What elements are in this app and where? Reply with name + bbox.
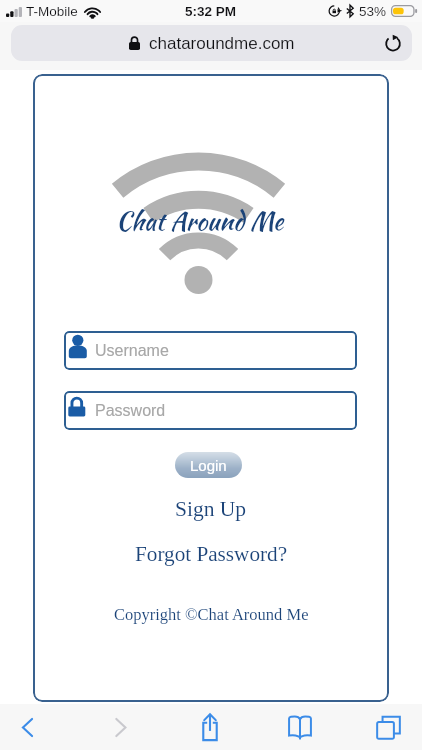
- button[interactable]: Forward: [93, 704, 147, 750]
- staticText: 53%: [359, 4, 387, 19]
- button[interactable]: Back: [0, 704, 54, 750]
- staticText: Password: [95, 402, 166, 420]
- staticText: T-Mobile: [26, 4, 78, 19]
- button[interactable]: Sign Up: [175, 497, 247, 521]
- button[interactable]: Username: [64, 331, 357, 370]
- staticText: chataroundme.com: [149, 34, 295, 53]
- button[interactable]: Password: [64, 391, 357, 430]
- button[interactable]: Share: [183, 704, 237, 750]
- staticText: Username: [95, 342, 169, 360]
- button[interactable]: Tabs: [361, 704, 416, 750]
- staticText: Copyright ©Chat Around Me: [114, 605, 309, 623]
- button[interactable]: Forgot Password?: [135, 542, 288, 565]
- staticText: Chat Around Me: [116, 203, 284, 240]
- staticText: Login: [190, 457, 227, 474]
- button[interactable]: Reload page: [374, 25, 412, 61]
- button[interactable]: Login: [175, 452, 242, 478]
- button[interactable]: chataroundme.com: [11, 25, 412, 61]
- button[interactable]: Bookmarks: [273, 704, 327, 750]
- staticText: 5:32 PM: [185, 4, 237, 19]
